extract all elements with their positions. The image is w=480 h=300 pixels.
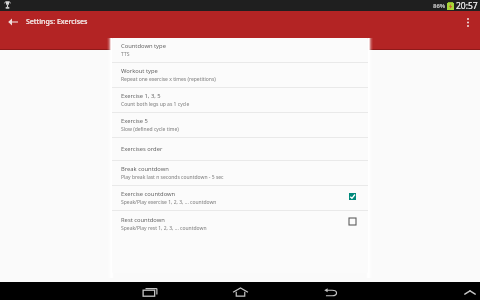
staticText: Break countdown [121, 165, 169, 173]
button[interactable]: Expand [459, 283, 480, 300]
staticText: TTS [121, 51, 130, 58]
button[interactable]: Exercises order [112, 138, 368, 161]
button[interactable]: Recent apps [134, 283, 166, 300]
button[interactable]: Exercise 1, 3, 5 [112, 88, 368, 113]
staticText: Exercise 1, 3, 5 [121, 92, 161, 100]
staticText: 86% [433, 2, 446, 10]
button[interactable]: Exercise countdown [112, 186, 368, 211]
staticText: Count both legs up as 1 cycle [121, 101, 190, 108]
staticText: Speak/Play rest 1, 2, 3, ... countdown [121, 225, 207, 232]
staticText: Exercise 5 [121, 117, 148, 125]
button[interactable]: Exercise 5 [112, 113, 368, 138]
staticText: Play break last n seconds countdown - 5 … [121, 174, 224, 181]
staticText: Countdown type [121, 42, 166, 50]
staticText: Exercise countdown [121, 190, 176, 198]
button[interactable]: Home [224, 283, 256, 300]
button[interactable]: Countdown type [112, 38, 368, 63]
staticText: Rest countdown [121, 216, 165, 224]
staticText: Speak/Play exercise 1, 2, 3, ... countdo… [121, 199, 217, 206]
staticText: Exercises order [121, 145, 163, 153]
button[interactable]: Disabled checkbox [345, 211, 359, 232]
staticText: 20:57 [456, 0, 478, 11]
button[interactable]: Back [315, 283, 347, 300]
button[interactable]: Navigate up [0, 11, 26, 33]
staticText: Repeat one exercise x times (repetitions… [121, 76, 216, 83]
button[interactable]: Workout type [112, 63, 368, 88]
staticText: Settings: Exercises [26, 17, 88, 27]
button[interactable]: More options [456, 11, 480, 33]
button[interactable]: Break countdown [112, 161, 368, 186]
button[interactable]: Enabled checkbox [345, 186, 359, 207]
button[interactable]: Rest countdown [112, 211, 368, 236]
other: Notification [5, 1, 10, 9]
staticText: Workout type [121, 67, 158, 75]
staticText: Slow (defined cycle time) [121, 126, 179, 133]
